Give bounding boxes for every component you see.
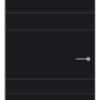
button[interactable]: Settings [4, 0, 95, 12]
button[interactable]: About [4, 78, 95, 92]
button[interactable]: Notifications [4, 29, 95, 51]
button[interactable]: Toggle setting [4, 51, 95, 78]
button[interactable]: Bottom bar [4, 92, 95, 100]
button[interactable]: Account [4, 12, 95, 29]
